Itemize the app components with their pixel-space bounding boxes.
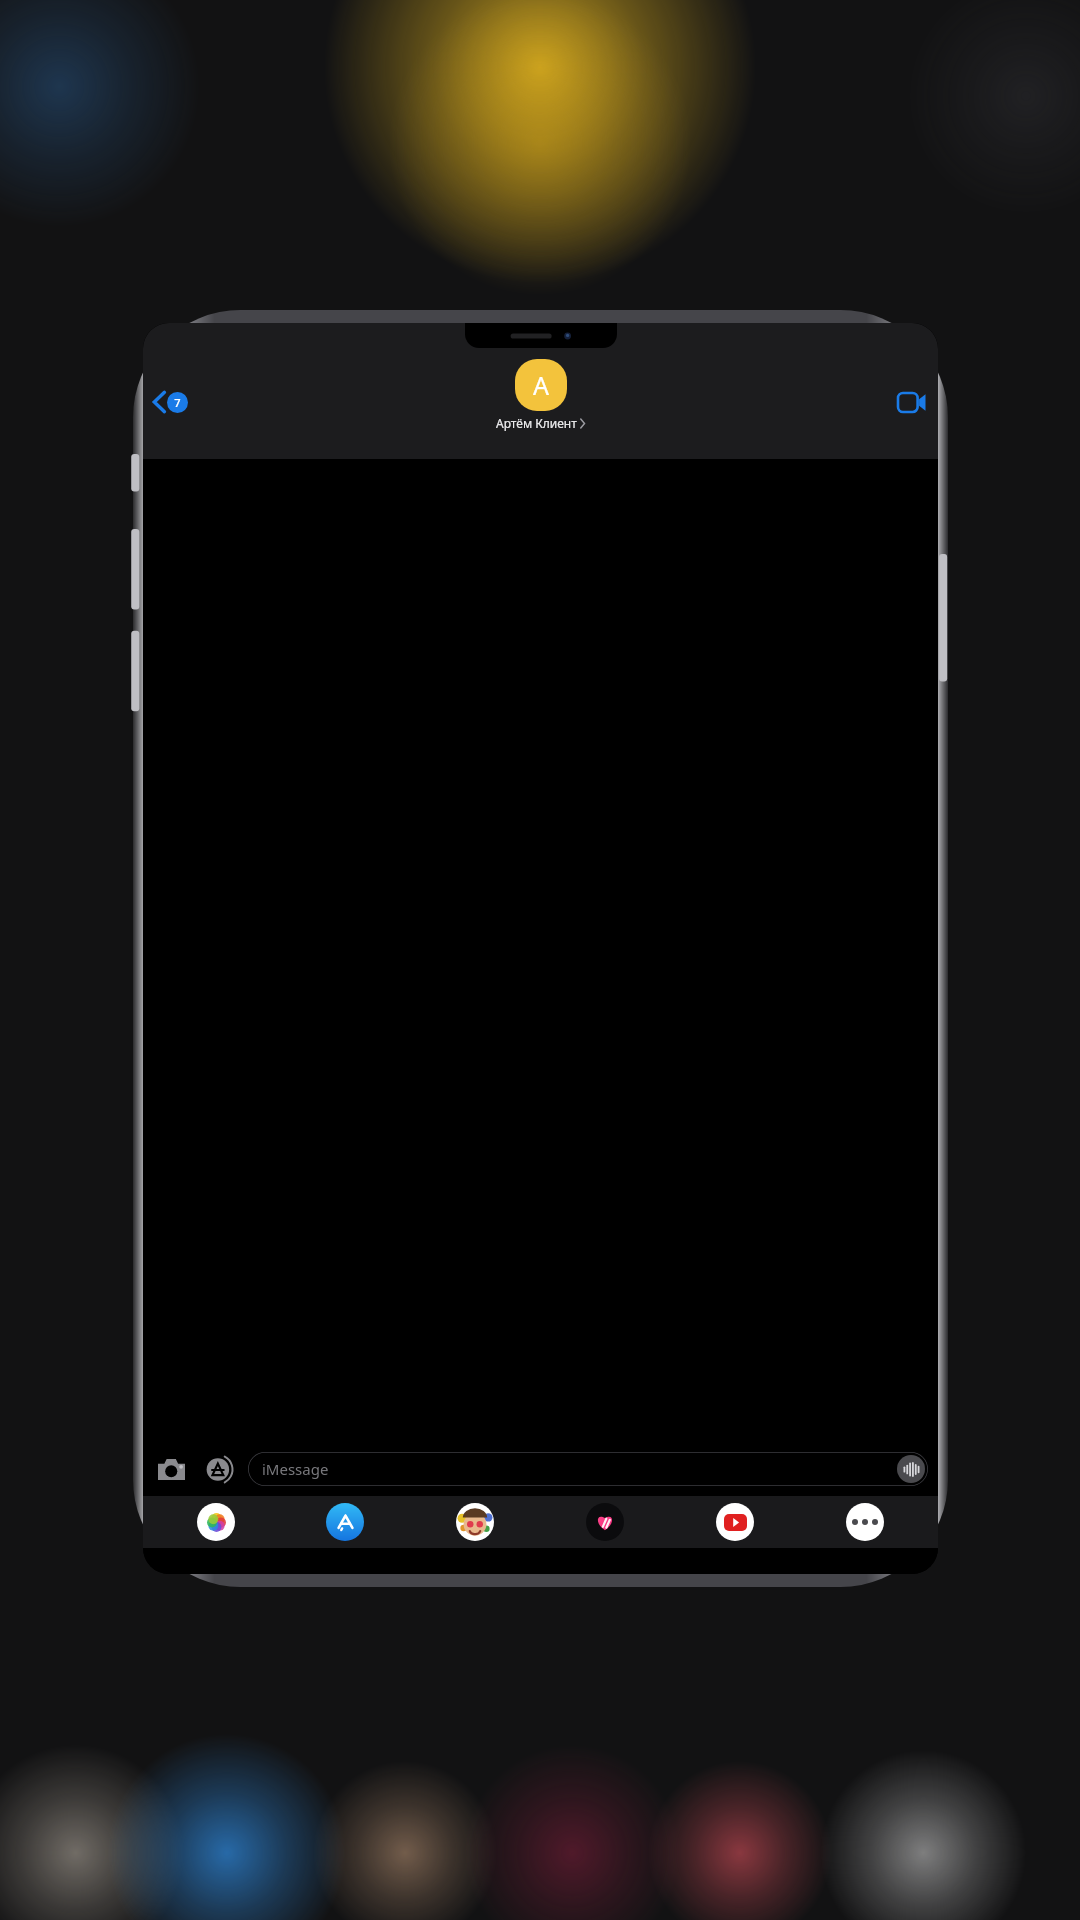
button[interactable]: Memoji stickers: [456, 1503, 494, 1541]
button[interactable]: FaceTime video call: [886, 381, 938, 424]
staticText: Артём Клиент: [496, 415, 577, 431]
button[interactable]: A: [488, 357, 593, 433]
button[interactable]: Photos: [197, 1503, 235, 1541]
button[interactable]: Back, 7 unread: [143, 385, 198, 419]
staticText: 7: [174, 395, 181, 410]
button[interactable]: iMessage apps: [202, 1453, 237, 1486]
button[interactable]: Camera: [153, 1453, 190, 1485]
button[interactable]: iMessage: [248, 1452, 928, 1486]
button[interactable]: Music: [586, 1503, 624, 1541]
button[interactable]: App Store: [326, 1503, 364, 1541]
button[interactable]: More apps: [846, 1503, 884, 1541]
staticText: iMessage: [262, 1459, 329, 1479]
button[interactable]: Record audio message: [897, 1455, 925, 1483]
button[interactable]: YouTube: [716, 1503, 754, 1541]
staticText: A: [533, 368, 549, 402]
